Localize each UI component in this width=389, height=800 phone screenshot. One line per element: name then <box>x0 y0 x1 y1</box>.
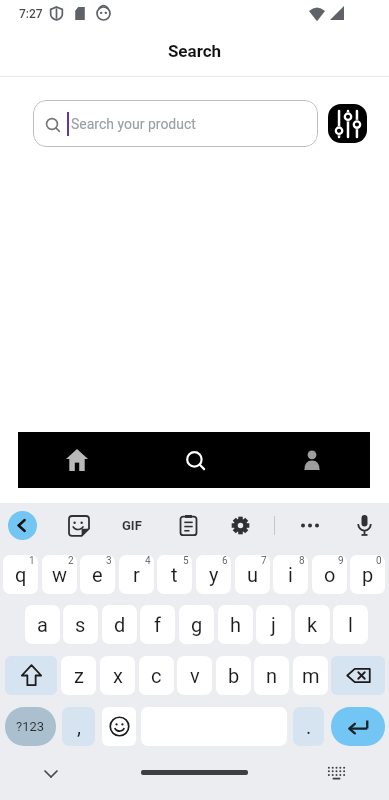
button[interactable]: v <box>177 656 212 695</box>
button[interactable]: y <box>196 555 231 594</box>
staticText: h <box>230 613 242 636</box>
button[interactable]: z <box>61 656 96 695</box>
button[interactable]: b <box>216 656 251 695</box>
button[interactable]: u <box>235 555 270 594</box>
staticText: x <box>113 664 123 687</box>
button[interactable]: f <box>140 605 175 644</box>
button[interactable] <box>295 511 324 540</box>
button[interactable]: m <box>293 656 328 695</box>
staticText: y <box>209 563 219 586</box>
staticText: GIF <box>122 518 142 533</box>
button[interactable]: . <box>293 707 324 746</box>
staticText: r <box>133 563 140 586</box>
staticText: g <box>191 613 203 636</box>
button[interactable]: p <box>350 555 385 594</box>
staticText: 6 <box>222 555 228 567</box>
button[interactable]: g <box>179 605 214 644</box>
staticText: 4 <box>145 555 151 567</box>
staticText: q <box>15 563 27 586</box>
staticText: j <box>271 613 276 636</box>
button[interactable]: GIF <box>117 511 146 540</box>
button[interactable]: r <box>119 555 154 594</box>
button[interactable]: d <box>102 605 137 644</box>
staticText: 7 <box>261 555 267 567</box>
staticText: f <box>154 613 161 636</box>
button[interactable]: q <box>3 555 38 594</box>
button[interactable] <box>18 432 136 488</box>
staticText: c <box>151 664 162 687</box>
button[interactable]: j <box>256 605 291 644</box>
button[interactable]: s <box>63 605 98 644</box>
button[interactable]: k <box>295 605 330 644</box>
staticText: s <box>75 613 86 636</box>
staticText: 9 <box>338 555 344 567</box>
button[interactable] <box>350 511 379 540</box>
staticText: n <box>266 664 278 687</box>
staticText: a <box>37 613 48 636</box>
staticText: w <box>52 563 68 586</box>
staticText: 8 <box>299 555 305 567</box>
staticText: 5 <box>183 555 189 567</box>
button[interactable] <box>331 707 385 746</box>
button[interactable]: , <box>62 707 95 746</box>
staticText: Search your product <box>71 116 196 132</box>
staticText: p <box>362 563 374 586</box>
button[interactable]: w <box>42 555 77 594</box>
button[interactable] <box>102 707 136 746</box>
button[interactable]: t <box>157 555 192 594</box>
staticText: , <box>77 715 81 738</box>
staticText: e <box>92 563 103 586</box>
button[interactable]: a <box>25 605 60 644</box>
button[interactable] <box>253 432 370 488</box>
staticText: 7:27 <box>19 7 43 21</box>
staticText: Search <box>0 41 389 61</box>
staticText: 1 <box>29 555 35 567</box>
button[interactable]: e <box>80 555 115 594</box>
staticText: z <box>74 664 84 687</box>
staticText: k <box>307 613 318 636</box>
staticText: u <box>247 563 259 586</box>
staticText: i <box>288 563 293 586</box>
staticText: l <box>348 613 353 636</box>
button[interactable] <box>174 511 203 540</box>
button[interactable]: h <box>218 605 253 644</box>
button[interactable]: c <box>139 656 174 695</box>
staticText: o <box>324 563 336 586</box>
button[interactable] <box>331 656 385 695</box>
staticText: 0 <box>376 555 382 567</box>
staticText: ?123 <box>16 719 45 734</box>
staticText: t <box>171 563 178 586</box>
staticText: 2 <box>68 555 74 567</box>
staticText: m <box>302 664 320 687</box>
button[interactable]: n <box>254 656 289 695</box>
staticText: d <box>114 613 126 636</box>
button[interactable]: x <box>100 656 135 695</box>
button[interactable] <box>5 656 57 695</box>
button[interactable] <box>328 104 367 143</box>
button[interactable] <box>226 511 255 540</box>
button[interactable]: ?123 <box>5 707 56 746</box>
button[interactable]: Search your product <box>33 100 318 147</box>
button[interactable]: o <box>312 555 347 594</box>
button[interactable] <box>136 432 253 488</box>
button[interactable] <box>8 511 37 540</box>
staticText: v <box>190 664 200 687</box>
staticText: 3 <box>106 555 112 567</box>
button[interactable]: l <box>333 605 368 644</box>
staticText: b <box>228 664 240 687</box>
button[interactable]: i <box>273 555 308 594</box>
staticText: . <box>306 715 312 738</box>
button[interactable] <box>64 511 93 540</box>
